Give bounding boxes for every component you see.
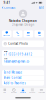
staticText: Voicemail [38, 92, 44, 93]
button[interactable]: mobile [2, 50, 44, 57]
staticText: message [3, 34, 10, 36]
button[interactable]: Contacts [18, 88, 28, 96]
staticText: Contacts [20, 92, 26, 93]
staticText: Contacts [4, 6, 15, 9]
staticText: Send Message [4, 71, 23, 74]
staticText: Recents [11, 92, 17, 93]
staticText: Lists [3, 92, 6, 93]
staticText: home [4, 58, 8, 60]
button[interactable]: call [13, 30, 22, 37]
staticText: video [26, 34, 30, 36]
button[interactable]: mail [34, 30, 44, 37]
staticText: Share Contact [4, 76, 22, 79]
button[interactable]: Contact Photo [2, 40, 44, 47]
button[interactable]: Keypad [28, 88, 37, 96]
button[interactable]: Send Message [2, 70, 44, 75]
button[interactable]: Edit [37, 6, 46, 10]
button[interactable]: message [2, 30, 11, 37]
button[interactable]: Lists [0, 88, 9, 96]
button[interactable]: Share Contact [2, 75, 44, 80]
staticText: +1 (555) 019-4412 [4, 53, 33, 56]
staticText: Edit [39, 6, 44, 9]
staticText: natasha@chapman.co [4, 60, 30, 63]
staticText: Add to Favorites [4, 81, 26, 85]
button[interactable]: Add to Favorites [2, 81, 44, 86]
staticText: Keypad [29, 92, 35, 93]
staticText: Contact Photo [8, 42, 28, 45]
button[interactable]: Contacts [0, 6, 16, 10]
staticText: Chapman Design [11, 23, 34, 26]
button[interactable]: video [24, 30, 33, 37]
staticText: mobile [4, 51, 8, 52]
staticText: Natasha Chapman [9, 19, 37, 23]
staticText: call [17, 34, 19, 36]
staticText: mail [38, 34, 40, 36]
button[interactable]: Recents [9, 88, 18, 96]
staticText: 9:41 [4, 1, 11, 4]
button[interactable]: Voicemail [37, 88, 46, 96]
button[interactable]: home [2, 57, 44, 64]
